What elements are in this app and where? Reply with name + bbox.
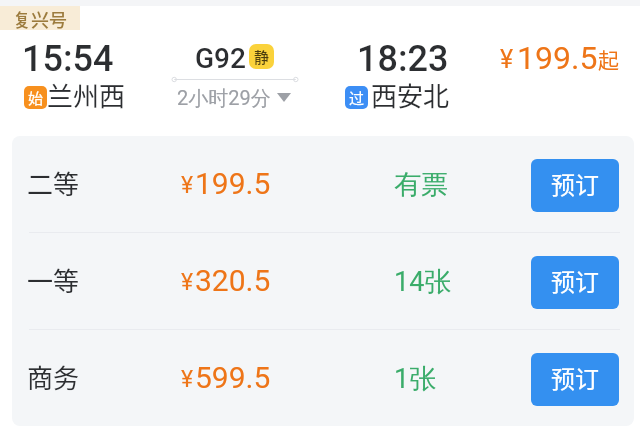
button[interactable]: 复兴号 — [0, 6, 80, 30]
staticText: 320.5 — [195, 263, 271, 298]
staticText: 起 — [598, 44, 619, 74]
staticText: ¥ — [181, 172, 194, 199]
staticText: 商务 — [27, 358, 80, 396]
staticText: ¥ — [500, 45, 514, 74]
staticText: 15:54 — [22, 38, 114, 80]
button[interactable]: 一等 — [12, 233, 634, 329]
button[interactable]: 商务 — [12, 330, 634, 426]
staticText: 始 — [28, 87, 44, 109]
staticText: 有票 — [394, 168, 448, 202]
button[interactable]: 2小时29分 — [171, 84, 299, 108]
staticText: 199.5 — [195, 166, 271, 201]
staticText: 预订 — [551, 263, 599, 298]
staticText: 西安北 — [371, 76, 450, 114]
staticText: 二等 — [27, 164, 80, 202]
staticText: ¥ — [181, 269, 194, 296]
staticText: 复兴号 — [13, 6, 67, 30]
staticText: 一等 — [27, 261, 80, 299]
staticText: 2小时29分 — [177, 86, 271, 110]
button[interactable]: 预订 — [531, 256, 619, 309]
staticText: 兰州西 — [47, 76, 126, 114]
staticText: 599.5 — [195, 360, 271, 395]
staticText: 199.5 — [517, 39, 598, 77]
staticText: ¥ — [181, 366, 194, 393]
button[interactable]: 预订 — [531, 353, 619, 406]
button[interactable]: 预订 — [531, 159, 619, 212]
staticText: G92 — [195, 42, 246, 75]
staticText: 1张 — [394, 362, 437, 396]
other: Expand schedule — [277, 93, 291, 102]
button[interactable]: 二等 — [12, 136, 634, 232]
staticText: 18:23 — [357, 38, 449, 80]
staticText: 预订 — [551, 360, 599, 395]
staticText: 14张 — [394, 265, 452, 299]
staticText: 预订 — [551, 166, 599, 201]
staticText: 过 — [349, 87, 365, 109]
staticText: 静 — [254, 46, 270, 68]
